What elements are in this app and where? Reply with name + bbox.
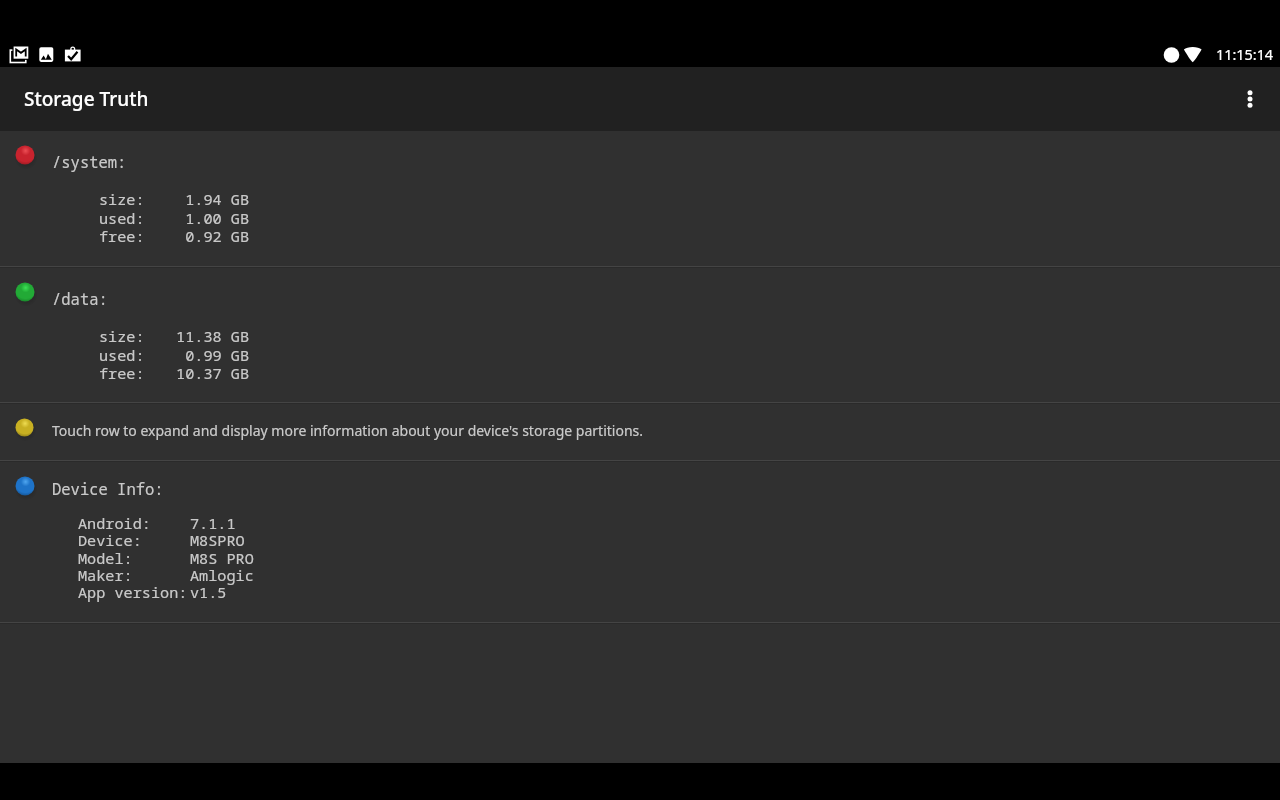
staticText: used: — [99, 208, 145, 229]
staticText: free: — [99, 363, 145, 384]
staticText: Amlogic — [190, 565, 254, 586]
button[interactable]: Device Info: — [0, 462, 1280, 622]
staticText: size: — [99, 326, 145, 347]
staticText: 1.00 GB — [169, 208, 249, 229]
staticText: 11.38 GB — [169, 326, 249, 347]
staticText: used: — [99, 345, 145, 366]
staticText: Touch row to expand and display more inf… — [52, 421, 644, 440]
button[interactable]: /data: — [0, 268, 1280, 402]
staticText: free: — [99, 226, 145, 247]
staticText: v1.5 — [190, 582, 227, 603]
staticText: 10.37 GB — [169, 363, 249, 384]
staticText: 7.1.1 — [190, 513, 236, 534]
staticText: Device: — [78, 530, 142, 551]
staticText: 0.99 GB — [169, 345, 249, 366]
button[interactable]: /system: — [0, 131, 1280, 266]
staticText: M8S PRO — [190, 548, 254, 569]
staticText: 1.94 GB — [169, 189, 249, 210]
staticText: 0.92 GB — [169, 226, 249, 247]
staticText: /data: — [52, 288, 108, 309]
staticText: Android: — [78, 513, 151, 534]
staticText: Device Info: — [52, 478, 164, 499]
staticText: /system: — [52, 151, 127, 172]
staticText: size: — [99, 189, 145, 210]
staticText: Maker: — [78, 565, 133, 586]
button[interactable]: Touch row to expand and display more inf… — [0, 404, 1280, 460]
staticText: App version: — [78, 582, 188, 603]
staticText: Storage Truth — [24, 86, 149, 112]
staticText: 11:15:14 — [1216, 45, 1274, 65]
staticText: M8SPRO — [190, 530, 245, 551]
staticText: Model: — [78, 548, 133, 569]
button[interactable]: More options — [1232, 71, 1268, 127]
